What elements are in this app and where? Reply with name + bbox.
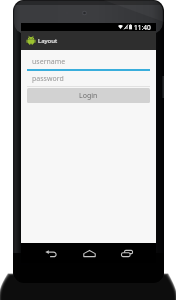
staticText: Login bbox=[79, 91, 98, 101]
button[interactable]: Login bbox=[27, 88, 150, 103]
button[interactable]: password bbox=[27, 74, 150, 87]
staticText: 11:40 bbox=[134, 23, 151, 31]
button[interactable]: Layout bbox=[21, 31, 156, 50]
button[interactable]: username bbox=[27, 57, 150, 71]
staticText: username bbox=[32, 57, 66, 67]
button[interactable]: Recent apps bbox=[113, 246, 141, 260]
button[interactable]: Back bbox=[37, 246, 65, 260]
staticText: password bbox=[32, 74, 64, 84]
staticText: Layout bbox=[38, 37, 58, 45]
button[interactable]: Home bbox=[75, 246, 103, 260]
